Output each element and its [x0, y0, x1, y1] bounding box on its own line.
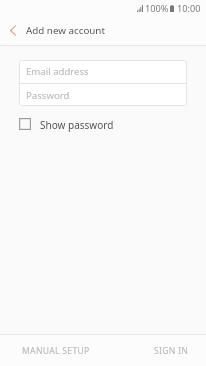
staticText: 10:00	[177, 2, 201, 15]
button[interactable]: Back	[0, 16, 26, 45]
staticText: Email address	[26, 65, 89, 78]
button[interactable]: Email address	[19, 60, 187, 83]
staticText: Show password	[40, 118, 114, 132]
staticText: Add new account	[26, 24, 105, 37]
staticText: SIGN IN	[154, 345, 189, 357]
staticText: MANUAL SETUP	[22, 345, 90, 357]
button[interactable]: Password	[19, 84, 187, 106]
button[interactable]: Show password	[19, 113, 114, 137]
staticText: 100%	[145, 2, 169, 15]
button[interactable]: MANUAL SETUP	[0, 335, 112, 366]
button[interactable]: SIGN IN	[134, 335, 206, 366]
staticText: Password	[26, 89, 70, 102]
